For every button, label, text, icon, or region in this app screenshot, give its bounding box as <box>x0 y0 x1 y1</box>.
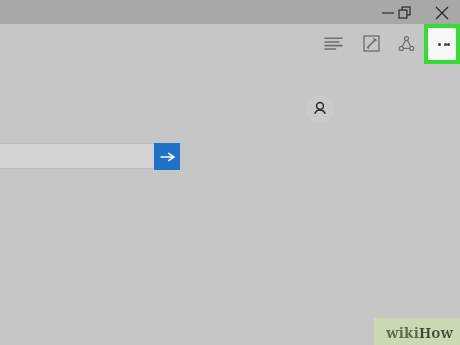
button[interactable]: Make a note <box>358 31 384 55</box>
staticText: How <box>419 322 454 342</box>
button[interactable]: Minimize <box>374 2 402 23</box>
button[interactable]: Close <box>428 2 456 23</box>
button[interactable]: Account <box>306 95 334 123</box>
button[interactable]: Reading list <box>320 31 346 55</box>
button[interactable]: Share <box>393 31 419 55</box>
staticText: wiki <box>386 322 419 342</box>
button[interactable]: Restore <box>390 2 418 23</box>
button[interactable]: More options <box>428 28 456 60</box>
button[interactable]: Send <box>154 143 180 170</box>
